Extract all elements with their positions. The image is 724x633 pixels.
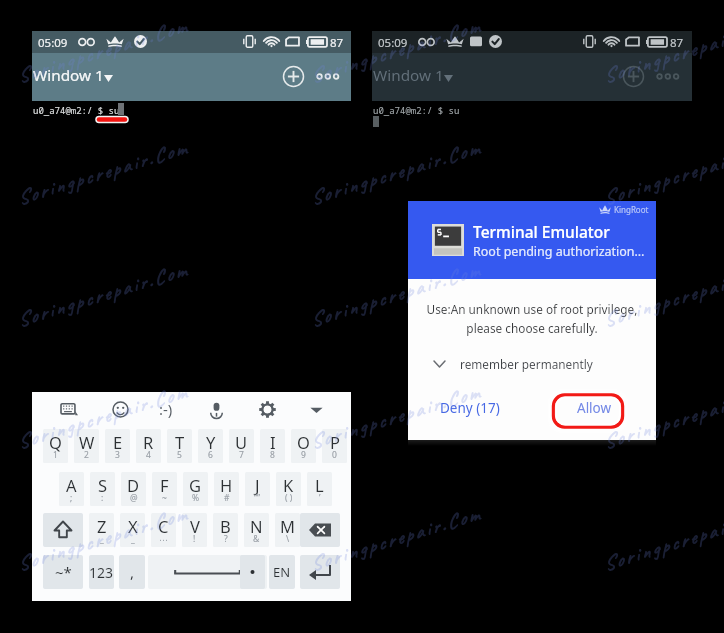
button[interactable]: O	[291, 429, 316, 463]
button[interactable]: K	[276, 472, 301, 506]
button[interactable]: W	[74, 429, 99, 463]
button[interactable]: U	[229, 429, 254, 463]
staticText: 6	[208, 449, 213, 461]
button[interactable]: Emoji	[107, 396, 133, 422]
staticText: H	[220, 474, 233, 496]
button[interactable]: A	[59, 472, 84, 506]
button[interactable]: New window	[280, 63, 307, 90]
staticText: T	[175, 431, 185, 453]
staticText: 123	[89, 563, 114, 582]
staticText: 05:09	[378, 35, 408, 51]
button[interactable]: B	[213, 513, 238, 547]
button[interactable]: J	[245, 472, 270, 506]
button[interactable]: H	[214, 472, 239, 506]
button[interactable]: G	[183, 472, 208, 506]
staticText: 0	[332, 449, 337, 461]
staticText: 2	[84, 449, 89, 461]
button[interactable]: New window	[620, 63, 647, 90]
staticText: Z	[97, 515, 107, 537]
button[interactable]: Period	[240, 555, 265, 589]
button[interactable]: Allow	[532, 385, 656, 431]
button[interactable]: More options	[315, 63, 342, 90]
button[interactable]: Enter	[300, 555, 340, 589]
staticText: 9	[301, 449, 306, 461]
staticText: \	[286, 533, 290, 545]
button[interactable]: P	[322, 429, 347, 463]
staticText: Deny (17)	[440, 399, 500, 417]
staticText: EN	[273, 563, 291, 581]
staticText: Window 1	[373, 65, 444, 86]
button[interactable]: R	[136, 429, 161, 463]
staticText: K	[283, 474, 294, 496]
button[interactable]: More options	[655, 63, 682, 90]
staticText: J	[255, 474, 260, 496]
button[interactable]: Space	[148, 555, 267, 589]
staticText: I	[270, 431, 276, 453]
staticText: G	[189, 474, 202, 496]
button[interactable]: Z	[89, 513, 114, 547]
staticText: “”	[254, 492, 261, 504]
button[interactable]: V	[182, 513, 207, 547]
button[interactable]: Shift	[43, 513, 83, 547]
button[interactable]: E	[105, 429, 130, 463]
staticText: remember permanently	[460, 356, 593, 372]
staticText: 05:09	[38, 35, 68, 51]
button[interactable]: Deny (17)	[408, 385, 532, 431]
button[interactable]: Backspace	[300, 513, 340, 547]
button[interactable]: N	[244, 513, 269, 547]
staticText: #	[224, 492, 230, 504]
button[interactable]: Y	[198, 429, 223, 463]
button[interactable]: L	[307, 472, 332, 506]
button[interactable]: ~*	[43, 555, 83, 589]
staticText: _	[100, 533, 104, 545]
button[interactable]: C	[151, 513, 176, 547]
staticText: X	[128, 515, 138, 537]
button[interactable]: Window 1	[371, 61, 455, 90]
staticText: O	[297, 431, 310, 453]
button[interactable]: Settings	[254, 396, 280, 422]
staticText: 4	[146, 449, 151, 461]
staticText: ~*	[55, 562, 72, 582]
button[interactable]: Keyboard layout	[56, 396, 82, 422]
button[interactable]: S	[90, 472, 115, 506]
button[interactable]: Window 1	[31, 61, 115, 90]
staticText: A	[66, 474, 77, 496]
staticText: :	[101, 492, 104, 504]
staticText: Y	[206, 431, 216, 453]
staticText: 5	[177, 449, 182, 461]
staticText: :-)	[159, 399, 173, 419]
staticText: ;	[70, 492, 73, 504]
button[interactable]: X	[120, 513, 145, 547]
staticText: ’	[319, 492, 321, 504]
button[interactable]: remember permanently	[408, 353, 656, 375]
staticText: 7	[239, 449, 244, 461]
staticText: 87	[670, 35, 684, 51]
staticText: U	[235, 431, 248, 453]
button[interactable]: Voice input	[203, 396, 229, 422]
button[interactable]: Hide keyboard	[303, 396, 329, 422]
staticText: KingRoot	[614, 204, 649, 215]
staticText: 1	[53, 449, 58, 461]
staticText: B	[220, 515, 231, 537]
staticText: 3	[115, 449, 120, 461]
staticText: R	[143, 431, 154, 453]
staticText: %	[192, 492, 200, 504]
button[interactable]: F	[152, 472, 177, 506]
staticText: Root pending authorization…	[473, 243, 645, 260]
staticText: Terminal Emulator	[473, 221, 610, 242]
staticText: M	[280, 515, 295, 537]
button[interactable]: 123	[89, 555, 114, 589]
staticText: D	[127, 474, 140, 496]
button[interactable]: EN	[269, 555, 295, 589]
button[interactable]: I	[260, 429, 285, 463]
button[interactable]: ,	[119, 555, 145, 589]
button[interactable]: Q	[43, 429, 68, 463]
button[interactable]: Emoticons	[153, 396, 179, 422]
staticText: ⋯	[159, 535, 168, 545]
staticText: Q	[49, 431, 62, 453]
staticText: &	[253, 533, 260, 545]
button[interactable]: T	[167, 429, 192, 463]
staticText: @	[130, 492, 138, 504]
button[interactable]: M	[275, 513, 300, 547]
button[interactable]: D	[121, 472, 146, 506]
